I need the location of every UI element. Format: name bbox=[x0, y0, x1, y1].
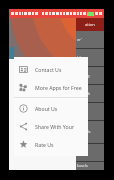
button[interactable]: d lotch bbox=[76, 85, 104, 102]
staticText: eeting bbox=[77, 73, 90, 79]
staticText: d lotch bbox=[77, 91, 91, 97]
button[interactable]: About Us bbox=[14, 99, 88, 117]
staticText: ethods bbox=[77, 129, 91, 135]
button[interactable]: Contact Us bbox=[14, 60, 88, 78]
staticText: er' bbox=[77, 37, 83, 43]
staticText: Rate Us bbox=[35, 141, 54, 148]
staticText: bles bbox=[77, 55, 86, 61]
button[interactable]: More Apps for Free bbox=[14, 78, 88, 96]
button[interactable]: Rate Us bbox=[14, 135, 88, 153]
button[interactable]: er' bbox=[76, 31, 104, 48]
button[interactable]: S bbox=[76, 103, 104, 120]
button[interactable]: Share With Your Friends bbox=[14, 117, 88, 135]
staticText: About Us bbox=[35, 105, 58, 112]
staticText: bools bbox=[77, 163, 88, 169]
staticText: ation bbox=[85, 22, 95, 27]
button[interactable]: bools bbox=[76, 162, 104, 170]
staticText: Share With Your Friends bbox=[35, 123, 85, 130]
button[interactable]: Notification bbox=[76, 18, 104, 31]
staticText: Contact Us bbox=[35, 66, 62, 73]
button[interactable]: ethods bbox=[76, 121, 104, 143]
button[interactable]: bles bbox=[76, 49, 104, 66]
staticText: More Apps for Free bbox=[35, 84, 82, 91]
button[interactable] bbox=[76, 144, 104, 161]
button[interactable]: eeting bbox=[76, 67, 104, 84]
